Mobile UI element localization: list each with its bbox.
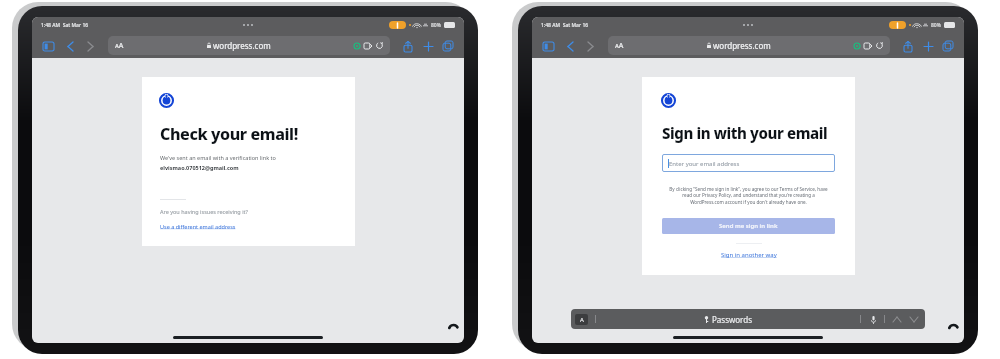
button[interactable]: ᴀA [108,36,390,55]
staticText: Use a different email address [160,223,236,230]
button[interactable]: Sidebar [540,38,556,54]
button[interactable]: Use a different email address [160,223,236,230]
button[interactable]: Autofill [575,314,588,325]
button[interactable]: Forward [582,38,598,54]
staticText: 1:48 AM Sat Mar 16 [41,22,89,29]
staticText: ᴀA [615,41,624,51]
button[interactable]: Previous field [891,314,902,325]
staticText: A [580,316,584,324]
staticText: 1:48 AM Sat Mar 16 [541,22,589,29]
button[interactable]: Passwords [596,314,860,325]
button[interactable]: Next field [908,314,919,325]
button[interactable]: Tabs [940,38,956,54]
button[interactable]: Sidebar [40,38,56,54]
button[interactable]: New tab [420,38,436,54]
staticText: Passwords [712,314,753,325]
staticText: We've sent an email with a verification … [160,154,276,161]
staticText: Check your email! [160,123,298,145]
staticText: wordpress.com [713,40,771,51]
staticText: ᴀA [115,41,124,51]
button[interactable]: Share [900,38,916,54]
staticText: Sign in another way [721,251,777,259]
button[interactable]: Share [400,38,416,54]
button[interactable]: Dictation [868,314,879,325]
button[interactable]: Forward [82,38,98,54]
staticText: wordpress.com [213,40,271,51]
staticText: Enter your email address [669,160,740,168]
staticText: Send me sign in link [719,222,778,230]
button[interactable]: Tabs [440,38,456,54]
button[interactable]: Send me sign in link [662,218,835,234]
button[interactable]: ᴀA [608,36,890,55]
staticText: elvismao.070512@gmail.com [160,164,239,171]
staticText: By clicking "Send me sign in link", you … [662,186,835,206]
button[interactable]: Back [62,38,78,54]
button[interactable]: Sign in another way [721,251,777,259]
staticText: 80% [431,22,441,29]
button[interactable]: Back [562,38,578,54]
staticText: 80% [931,22,941,29]
button[interactable]: Enter your email address [662,154,835,172]
button[interactable]: New tab [920,38,936,54]
staticText: Are you having issues receiving it? [160,208,248,215]
staticText: Sign in with your email [662,123,828,143]
